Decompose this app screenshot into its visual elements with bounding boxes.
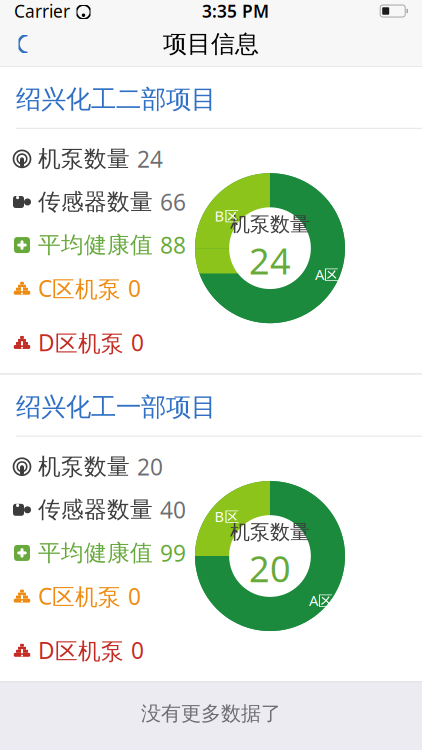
staticText: 66 xyxy=(160,187,186,217)
staticText: 平均健康值 xyxy=(38,231,153,259)
staticText: 绍兴化工二部项目 xyxy=(16,84,216,115)
staticText: 传感器数量 xyxy=(38,188,153,216)
staticText: 20 xyxy=(137,452,163,482)
staticText: D区机泵 xyxy=(38,327,124,357)
staticText: 机泵数量 xyxy=(38,453,130,481)
staticText: 传感器数量 xyxy=(38,496,153,524)
staticText: 0 xyxy=(131,635,144,665)
staticText: 0 xyxy=(128,581,141,611)
staticText: 40 xyxy=(160,495,186,525)
staticText: 机泵数量 xyxy=(230,520,310,544)
staticText: 99 xyxy=(160,538,186,568)
button[interactable]: 绍兴化工二部项目 xyxy=(0,67,422,374)
staticText: 没有更多数据了 xyxy=(141,701,281,726)
staticText: B区 xyxy=(214,206,239,226)
staticText: 平均健康值 xyxy=(38,539,153,567)
staticText: C区机泵 xyxy=(38,581,121,611)
staticText: 0 xyxy=(131,327,144,357)
staticText: 绍兴化工一部项目 xyxy=(16,392,216,423)
staticText: D区机泵 xyxy=(38,635,124,665)
staticText: 机泵数量 xyxy=(38,145,130,173)
staticText: 24 xyxy=(137,144,163,174)
staticText: B区 xyxy=(214,506,239,526)
staticText: 项目信息 xyxy=(163,29,259,59)
staticText: A区 xyxy=(309,590,333,610)
staticText: 机泵数量 xyxy=(230,212,310,237)
staticText: 0 xyxy=(128,273,141,303)
button[interactable]: Back xyxy=(0,22,46,66)
staticText: 3:35 PM xyxy=(202,0,269,22)
staticText: Carrier xyxy=(14,0,70,22)
staticText: 88 xyxy=(160,230,186,260)
staticText: A区 xyxy=(315,265,339,284)
staticText: C区机泵 xyxy=(38,273,121,303)
staticText: 24 xyxy=(249,237,291,284)
button[interactable]: 绍兴化工一部项目 xyxy=(0,375,422,681)
staticText: 20 xyxy=(249,544,291,592)
